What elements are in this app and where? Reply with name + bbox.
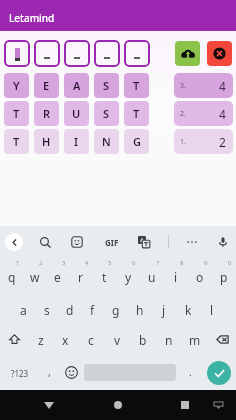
button[interactable] [34, 40, 60, 67]
staticText: e [54, 269, 61, 285]
button[interactable]: b [130, 323, 156, 356]
button[interactable]: T [4, 129, 29, 154]
staticText: s [44, 302, 50, 318]
staticText: k [185, 302, 192, 318]
staticText: 9 [204, 259, 208, 267]
staticText: 3. [180, 81, 186, 91]
staticText: H [42, 134, 51, 149]
button[interactable]: S [94, 101, 119, 126]
button[interactable] [124, 40, 150, 67]
staticText: 1. [180, 137, 186, 147]
button[interactable]: GIF [101, 231, 123, 253]
button[interactable]: Translate [133, 231, 155, 253]
button[interactable]: E [34, 73, 59, 98]
button[interactable]: Emoji [60, 356, 82, 389]
staticText: T [133, 106, 140, 121]
button[interactable]: x [53, 323, 78, 356]
button[interactable]: m [182, 323, 208, 356]
button[interactable]: q [0, 257, 23, 290]
button[interactable]: Recent apps [172, 392, 198, 418]
staticText: a [20, 302, 27, 318]
button[interactable]: n [156, 323, 182, 356]
button[interactable]: G [124, 129, 149, 154]
staticText: 7 [156, 259, 160, 267]
button[interactable]: r [69, 257, 92, 290]
button[interactable]: Voice input [212, 231, 234, 253]
button[interactable] [64, 40, 90, 67]
button[interactable]: 3. [180, 73, 226, 98]
button[interactable]: Stickers [66, 231, 88, 253]
button[interactable]: u [140, 257, 164, 290]
button[interactable]: Y [4, 73, 29, 98]
button[interactable]: s [35, 290, 58, 323]
other: Voice input [217, 236, 229, 248]
button[interactable]: Hide keyboard [207, 394, 229, 416]
button[interactable]: e [46, 257, 69, 290]
button[interactable]: c [78, 323, 104, 356]
staticText: S [103, 78, 110, 93]
button[interactable]: Enter [207, 361, 231, 385]
staticText: 2. [180, 109, 186, 119]
button[interactable]: i [164, 257, 188, 290]
staticText: A [73, 78, 81, 93]
button[interactable]: 1. [180, 129, 226, 154]
button[interactable]: T [124, 73, 149, 98]
button[interactable]: Submit guess [175, 41, 200, 66]
button[interactable]: Home [105, 392, 131, 418]
button[interactable]: . [180, 356, 200, 389]
staticText: 0 [228, 259, 232, 267]
button[interactable]: p [212, 257, 236, 290]
button[interactable]: k [176, 290, 200, 323]
button[interactable]: a [12, 290, 35, 323]
button[interactable]: 2. [180, 101, 226, 126]
button[interactable]: I [64, 129, 89, 154]
button[interactable]: Back [5, 233, 23, 251]
button[interactable]: g [104, 290, 128, 323]
button[interactable]: A [64, 73, 89, 98]
staticText: f [90, 302, 95, 318]
button[interactable]: t [92, 257, 116, 290]
button[interactable]: h [128, 290, 152, 323]
button[interactable]: Back [36, 392, 62, 418]
button[interactable] [4, 40, 30, 67]
button[interactable]: Search [34, 231, 56, 253]
button[interactable]: Clear guess [207, 41, 232, 66]
button[interactable]: S [94, 73, 119, 98]
button[interactable]: z [28, 323, 53, 356]
button[interactable]: d [58, 290, 81, 323]
staticText: x [62, 332, 69, 348]
staticText: w [30, 269, 40, 285]
button[interactable]: Shift [0, 323, 28, 356]
button[interactable]: T [4, 101, 29, 126]
button[interactable]: l [200, 290, 224, 323]
button[interactable]: Backspace [208, 323, 236, 356]
staticText: b [139, 332, 147, 348]
staticText: 1 [16, 259, 20, 267]
button[interactable]: f [81, 290, 104, 323]
staticText: h [136, 302, 144, 318]
button[interactable]: , [38, 356, 60, 389]
button[interactable]: ?123 [2, 356, 38, 389]
button[interactable]: o [188, 257, 212, 290]
staticText: 4 [219, 78, 226, 94]
button[interactable] [94, 40, 120, 67]
staticText: I [74, 134, 79, 149]
staticText: . [189, 365, 192, 379]
staticText: 2 [39, 259, 43, 267]
button[interactable]: T [124, 101, 149, 126]
button[interactable]: U [64, 101, 89, 126]
button[interactable]: w [23, 257, 46, 290]
button[interactable]: H [34, 129, 59, 154]
staticText: 2 [219, 134, 226, 150]
button[interactable]: y [116, 257, 140, 290]
staticText: c [88, 332, 94, 348]
staticText: Y [13, 78, 20, 93]
button[interactable]: v [104, 323, 130, 356]
button[interactable]: N [94, 129, 119, 154]
staticText: t [102, 269, 107, 285]
button[interactable]: More options [181, 231, 203, 253]
other: Translate [138, 236, 150, 248]
button[interactable]: R [34, 101, 59, 126]
button[interactable]: j [152, 290, 176, 323]
